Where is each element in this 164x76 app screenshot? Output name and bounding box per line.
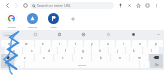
button[interactable]: s — [23, 47, 40, 54]
button[interactable]: More options — [152, 1, 161, 10]
staticText: y — [91, 42, 93, 46]
button[interactable]: e — [35, 40, 51, 47]
button[interactable]: Shift — [1, 54, 15, 61]
staticText: Go — [155, 63, 159, 67]
button[interactable]: f — [58, 47, 74, 54]
staticText: m — [138, 56, 141, 60]
button[interactable]: Clipboard — [56, 31, 63, 38]
staticText: j — [117, 49, 118, 53]
staticText: i — [123, 42, 124, 46]
button[interactable]: g — [75, 47, 91, 54]
button[interactable]: h — [92, 47, 108, 54]
button[interactable]: ?123 — [1, 61, 14, 68]
staticText: e — [42, 42, 44, 46]
staticText: Index — [50, 25, 57, 28]
button[interactable]: t — [68, 40, 83, 47]
button[interactable]: Forward — [12, 1, 21, 10]
button[interactable]: Internet World — [25, 13, 40, 28]
button[interactable]: Google — [32, 31, 39, 38]
button[interactable]: b — [92, 54, 110, 61]
staticText: s — [31, 49, 33, 53]
button[interactable]: j — [109, 47, 125, 54]
button[interactable]: a — [5, 47, 22, 54]
staticText: q — [8, 42, 10, 46]
button[interactable]: Search or enter URL — [30, 2, 114, 9]
button[interactable]: z — [16, 54, 34, 61]
button[interactable]: k — [126, 47, 142, 54]
button[interactable]: Backspace — [149, 54, 163, 61]
button[interactable]: n — [111, 54, 129, 61]
staticText: t — [75, 42, 77, 46]
button[interactable]: u — [100, 40, 115, 47]
staticText: x — [43, 56, 45, 60]
button[interactable]: p — [148, 40, 163, 47]
button[interactable]: Sticker — [80, 31, 87, 38]
button[interactable]: r — [52, 40, 67, 47]
staticText: ?123 — [5, 63, 11, 67]
staticText: g — [82, 49, 84, 53]
staticText: h — [99, 49, 101, 53]
staticText: l — [151, 49, 152, 53]
button[interactable]: o — [132, 40, 147, 47]
staticText: z — [24, 56, 26, 60]
staticText: u — [107, 42, 109, 46]
staticText: n — [119, 56, 121, 60]
button[interactable]: i — [116, 40, 131, 47]
staticText: k — [133, 49, 135, 53]
staticText: English — [78, 63, 87, 66]
staticText: . — [144, 63, 145, 67]
staticText: p — [155, 42, 157, 46]
button[interactable]: . — [140, 61, 149, 68]
button[interactable]: Phrase — [2, 32, 15, 37]
button[interactable]: m — [130, 54, 148, 61]
staticText: b — [100, 56, 102, 60]
button[interactable]: d — [41, 47, 57, 54]
button[interactable]: Index — [46, 13, 61, 28]
button[interactable]: l — [143, 47, 159, 54]
staticText: r — [59, 42, 61, 46]
staticText: Phrase — [5, 33, 13, 36]
button[interactable]: y — [84, 40, 99, 47]
button[interactable]: More — [155, 31, 162, 38]
button[interactable]: Voice search — [116, 1, 125, 10]
button[interactable]: Tabs — [143, 1, 152, 10]
staticText: o — [139, 42, 141, 46]
staticText: d — [48, 49, 50, 53]
button[interactable]: Bookmark — [134, 1, 143, 10]
button[interactable]: w — [18, 40, 34, 47]
staticText: a — [13, 49, 15, 53]
button[interactable]: Go — [150, 61, 163, 68]
staticText: v — [81, 56, 83, 60]
staticText: , — [19, 63, 20, 67]
button[interactable]: Back — [3, 1, 12, 10]
button[interactable]: x — [35, 54, 53, 61]
staticText: c — [62, 56, 64, 60]
button[interactable]: Settings — [105, 31, 112, 38]
button[interactable]: Add shortcut — [67, 13, 78, 24]
button[interactable]: Cast — [125, 1, 134, 10]
button[interactable]: Refresh — [21, 1, 30, 10]
button[interactable]: Theme — [130, 31, 137, 38]
button[interactable]: , — [15, 61, 24, 68]
staticText: Search or enter URL — [37, 3, 71, 8]
staticText: f — [65, 49, 67, 53]
button[interactable]: q — [1, 40, 17, 47]
button[interactable]: Google — [4, 13, 19, 28]
staticText: Internet World — [25, 25, 40, 28]
button[interactable]: c — [54, 54, 72, 61]
button[interactable]: Space — [25, 61, 139, 68]
staticText: w — [25, 42, 28, 46]
staticText: Google — [7, 25, 16, 28]
button[interactable]: v — [73, 54, 91, 61]
